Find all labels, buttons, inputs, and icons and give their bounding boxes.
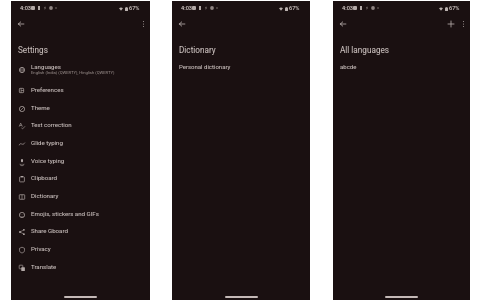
staticText: English (India) (QWERTY), Hinglish (QWER… <box>31 70 115 75</box>
staticText: 4:03 <box>342 5 354 12</box>
button[interactable]: Clipboard <box>11 169 150 187</box>
button[interactable]: Navigate up <box>174 16 190 32</box>
staticText: Preferences <box>31 86 64 93</box>
staticText: Languages <box>31 63 61 70</box>
staticText: abcde <box>340 63 357 70</box>
staticText: Clipboard <box>31 174 58 181</box>
staticText: All languages <box>340 45 390 55</box>
staticText: 4:03 <box>20 5 32 12</box>
staticText: Voice typing <box>31 157 65 164</box>
button[interactable]: Translate <box>11 258 150 276</box>
staticText: 67% <box>449 5 460 12</box>
button[interactable]: Glide typing <box>11 134 150 152</box>
button[interactable]: Theme <box>11 99 150 117</box>
button[interactable]: Text correction <box>11 116 150 134</box>
staticText: Privacy <box>31 245 51 252</box>
staticText: Dictionary <box>179 45 216 55</box>
button[interactable]: abcde <box>333 58 470 74</box>
button[interactable]: Personal dictionary <box>172 58 310 74</box>
staticText: Emojis, stickers and GIFs <box>31 210 99 217</box>
button[interactable]: Share Gboard <box>11 222 150 240</box>
button[interactable]: Emojis, stickers and GIFs <box>11 205 150 223</box>
staticText: Text correction <box>31 121 72 128</box>
button[interactable]: Languages <box>11 60 150 85</box>
staticText: 67% <box>289 5 300 12</box>
staticText: Glide typing <box>31 139 63 146</box>
button[interactable]: Privacy <box>11 240 150 258</box>
button[interactable]: Preferences <box>11 81 150 99</box>
staticText: Theme <box>31 104 50 111</box>
button[interactable]: Add language <box>445 18 457 30</box>
staticText: 67% <box>129 5 140 12</box>
button[interactable]: Navigate up <box>13 16 29 32</box>
staticText: Translate <box>31 263 57 270</box>
staticText: Dictionary <box>31 192 59 199</box>
staticText: 4:03 <box>181 5 193 12</box>
staticText: Personal dictionary <box>179 63 231 70</box>
staticText: Share Gboard <box>31 227 68 234</box>
button[interactable]: More options <box>137 18 149 30</box>
button[interactable]: Dictionary <box>11 187 150 205</box>
button[interactable]: Navigate up <box>335 16 351 32</box>
button[interactable]: Voice typing <box>11 152 150 170</box>
button[interactable]: More options <box>457 18 469 30</box>
staticText: Settings <box>18 45 48 55</box>
